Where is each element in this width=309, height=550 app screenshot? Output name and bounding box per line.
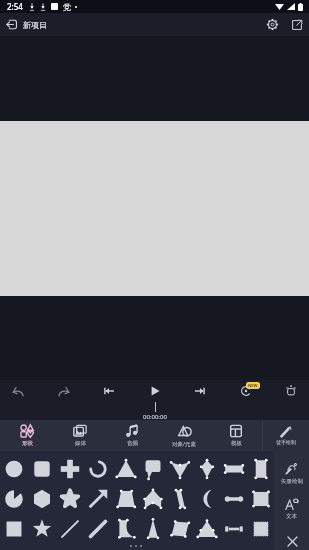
button[interactable]: 对象/元素 <box>158 420 210 451</box>
button[interactable]: Shape 6 <box>166 454 193 484</box>
staticText: 模板 <box>231 440 242 447</box>
staticText: 音频 <box>127 440 138 447</box>
button[interactable]: 音频 <box>106 420 158 451</box>
button[interactable]: Shape 22 <box>56 514 84 544</box>
button[interactable]: Shape 0 <box>0 454 28 484</box>
button[interactable]: Shape 25 <box>139 514 166 544</box>
button[interactable]: 形状 <box>0 420 53 451</box>
button[interactable]: Skip to start <box>97 380 121 402</box>
staticText: 矢量绘制 <box>281 478 303 485</box>
button[interactable]: Redo <box>52 380 76 402</box>
button[interactable]: Shape 5 <box>139 454 166 484</box>
button[interactable]: Settings <box>261 13 284 36</box>
button[interactable]: Shape 18 <box>220 484 247 514</box>
button[interactable]: Shape 13 <box>84 484 112 514</box>
button[interactable]: Shape 14 <box>112 484 139 514</box>
button[interactable]: Shape 17 <box>193 484 220 514</box>
staticText: 新项目 <box>23 20 47 30</box>
button[interactable]: Shape 4 <box>112 454 139 484</box>
button[interactable]: Shape 20 <box>0 514 28 544</box>
button[interactable]: Skip to end <box>188 380 212 402</box>
button[interactable]: Shape 9 <box>247 454 274 484</box>
staticText: 徒手绘制 <box>276 439 296 445</box>
staticText: 媒体 <box>75 440 86 447</box>
button[interactable]: Shape 7 <box>193 454 220 484</box>
staticText: 形状 <box>22 440 33 447</box>
staticText: 2:54 <box>7 1 23 12</box>
button[interactable]: Animation <box>234 380 258 402</box>
button[interactable]: 矢量绘制 <box>274 462 309 485</box>
button[interactable]: Undo <box>6 380 30 402</box>
button[interactable]: Shape 24 <box>112 514 139 544</box>
staticText: 文本 <box>286 513 297 520</box>
button[interactable]: Export <box>284 13 309 36</box>
button[interactable]: Close <box>282 532 302 550</box>
button[interactable]: 媒体 <box>53 420 106 451</box>
button[interactable]: Shape 26 <box>166 514 193 544</box>
staticText: 党 <box>63 2 71 12</box>
staticText: NEW <box>248 383 258 388</box>
button[interactable]: Shape 28 <box>220 514 247 544</box>
button[interactable]: Shape 29 <box>247 514 274 544</box>
button[interactable]: Shape 21 <box>28 514 56 544</box>
button[interactable]: Shape 27 <box>193 514 220 544</box>
button[interactable]: Shape 19 <box>247 484 274 514</box>
button[interactable]: Shape 2 <box>56 454 84 484</box>
button[interactable]: Shape 11 <box>28 484 56 514</box>
button[interactable]: Transform <box>279 380 303 402</box>
button[interactable]: 徒手绘制 <box>263 420 309 451</box>
button[interactable]: Shape 16 <box>166 484 193 514</box>
button[interactable]: Shape 12 <box>56 484 84 514</box>
button[interactable]: Shape 1 <box>28 454 56 484</box>
button[interactable]: 模板 <box>210 420 262 451</box>
button[interactable]: Back <box>0 13 23 36</box>
staticText: 对象/元素 <box>172 440 197 448</box>
button[interactable]: Shape 15 <box>139 484 166 514</box>
button[interactable]: Shape 3 <box>84 454 112 484</box>
button[interactable]: Shape 10 <box>0 484 28 514</box>
button[interactable]: Shape 23 <box>84 514 112 544</box>
staticText: 00:00:00 <box>143 413 167 420</box>
button[interactable]: Shape 8 <box>220 454 247 484</box>
button[interactable]: 文本 <box>274 498 309 520</box>
button[interactable]: Play <box>143 380 167 402</box>
